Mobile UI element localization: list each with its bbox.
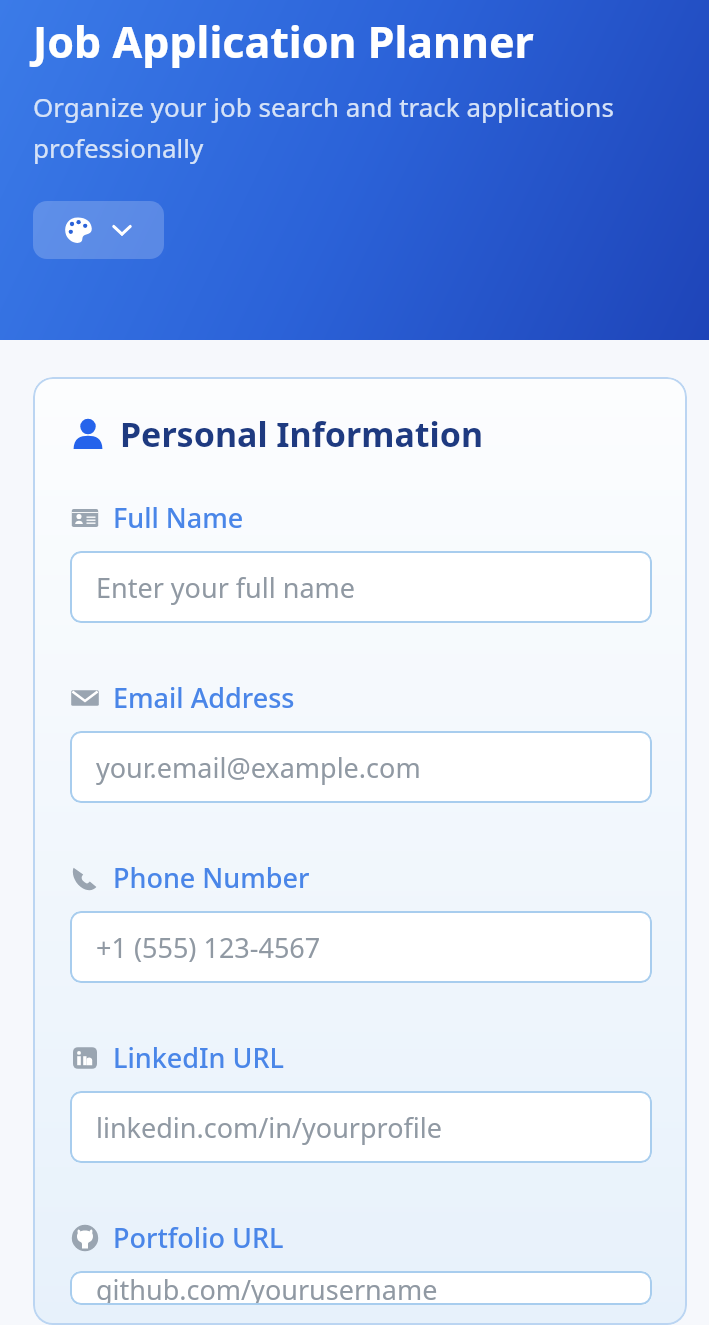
staticText: Full Name	[113, 499, 244, 536]
button[interactable]: Change theme	[33, 201, 164, 259]
button[interactable]: github.com/yourusername	[70, 1271, 652, 1305]
staticText: Enter your full name	[96, 569, 356, 606]
staticText: Email Address	[113, 679, 295, 716]
staticText: github.com/yourusername	[96, 1271, 438, 1305]
button[interactable]: linkedin.com/in/yourprofile	[70, 1091, 652, 1163]
button[interactable]: your.email@example.com	[70, 731, 652, 803]
staticText: Organize your job search and track appli…	[33, 89, 683, 166]
button[interactable]: +1 (555) 123-4567	[70, 911, 652, 983]
staticText: LinkedIn URL	[113, 1039, 284, 1076]
staticText: Job Application Planner	[33, 12, 534, 71]
staticText: +1 (555) 123-4567	[96, 929, 321, 966]
staticText: linkedin.com/in/yourprofile	[96, 1109, 442, 1146]
staticText: your.email@example.com	[96, 749, 421, 786]
staticText: Phone Number	[113, 859, 310, 896]
staticText: Portfolio URL	[113, 1219, 284, 1256]
staticText: Personal Information	[120, 411, 484, 457]
button[interactable]: Enter your full name	[70, 551, 652, 623]
